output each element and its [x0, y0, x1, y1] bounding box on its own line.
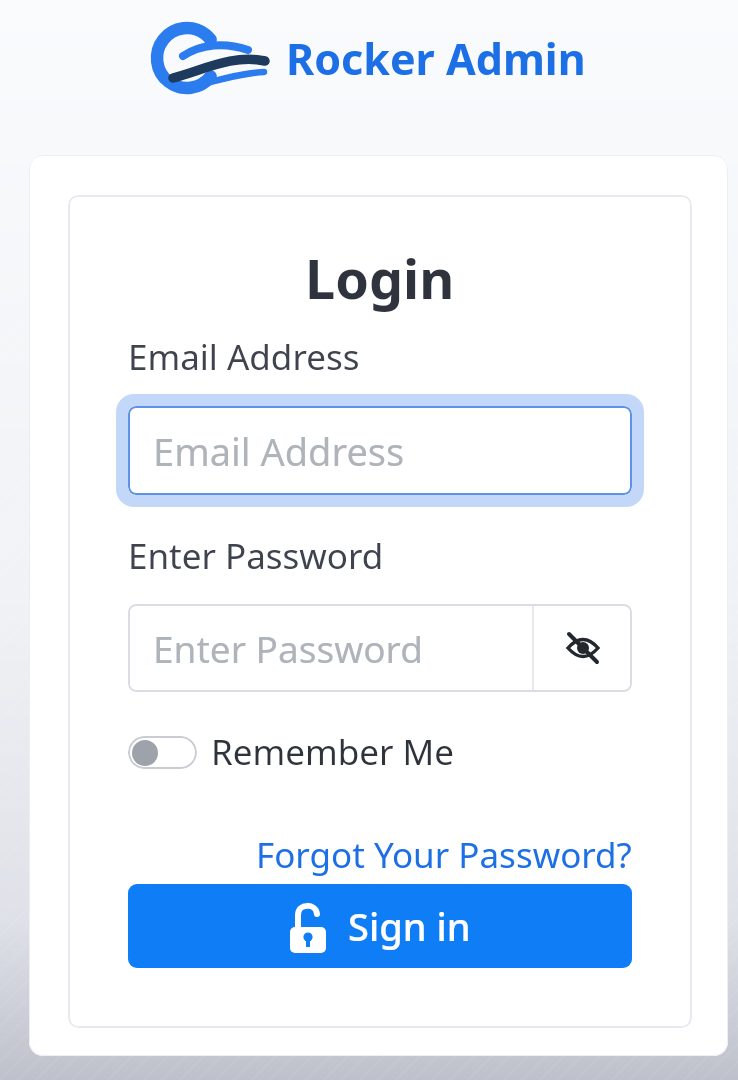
staticText: Email Address	[153, 425, 405, 477]
staticText: Sign in	[348, 900, 471, 952]
staticText: Email Address	[128, 333, 360, 381]
staticText: Enter Password	[128, 532, 384, 580]
button[interactable]: Forgot Your Password?	[256, 831, 632, 879]
button[interactable]: Sign in	[128, 884, 632, 968]
button[interactable]: Email Address	[128, 406, 632, 495]
staticText: Enter Password	[153, 623, 423, 673]
staticText: Login	[305, 241, 455, 315]
button[interactable]	[128, 736, 197, 769]
button[interactable]: Enter Password	[128, 604, 532, 692]
staticText: Rocker Admin	[286, 29, 586, 88]
button[interactable]	[534, 604, 632, 692]
staticText: Remember Me	[211, 728, 455, 776]
